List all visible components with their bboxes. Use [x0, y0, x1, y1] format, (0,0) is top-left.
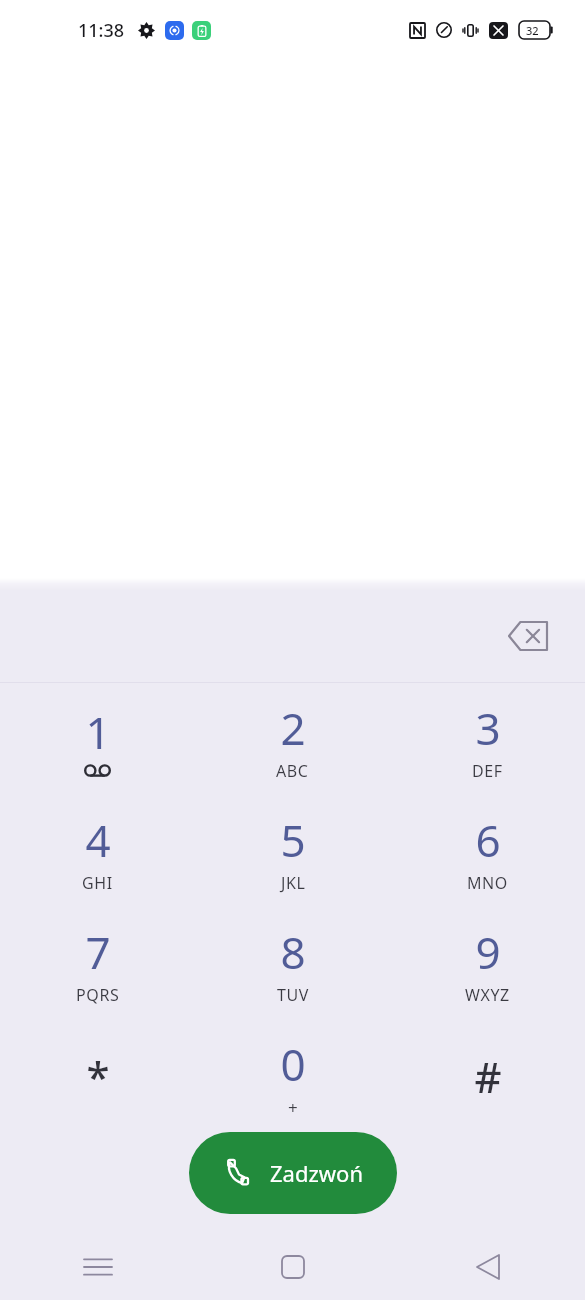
staticText: 32 — [526, 23, 539, 38]
staticText: 7 — [85, 922, 111, 982]
staticText: 9 — [475, 922, 501, 982]
button[interactable]: 8 — [195, 908, 390, 1020]
button[interactable]: 1 — [0, 683, 195, 796]
button[interactable]: # — [390, 1020, 585, 1132]
staticText: 4 — [85, 810, 111, 870]
button[interactable]: 2 — [195, 683, 390, 796]
staticText: JKL — [281, 872, 306, 894]
staticText: 0 — [280, 1034, 306, 1094]
button[interactable]: 4 — [0, 796, 195, 908]
button[interactable]: Zadzwoń — [189, 1132, 397, 1214]
button[interactable]: 5 — [195, 796, 390, 908]
staticText: 1 — [85, 702, 111, 762]
staticText: 6 — [475, 810, 501, 870]
button[interactable]: 0 — [195, 1020, 390, 1132]
staticText: WXYZ — [465, 984, 510, 1006]
staticText: DEF — [472, 760, 503, 782]
button[interactable]: Recents — [0, 1234, 195, 1300]
staticText: 11:38 — [78, 18, 125, 43]
staticText: 3 — [475, 698, 501, 758]
staticText: Zadzwoń — [270, 1158, 363, 1188]
staticText: TUV — [277, 984, 309, 1006]
staticText: 8 — [280, 922, 306, 982]
staticText: MNO — [467, 872, 508, 894]
staticText: 5 — [280, 810, 306, 870]
button[interactable]: 9 — [390, 908, 585, 1020]
button[interactable]: 7 — [0, 908, 195, 1020]
button[interactable]: Back — [390, 1234, 585, 1300]
button[interactable]: Backspace — [495, 603, 561, 669]
staticText: # — [474, 1048, 502, 1105]
button[interactable]: 3 — [390, 683, 585, 796]
button[interactable]: Home — [195, 1234, 390, 1300]
button[interactable]: 6 — [390, 796, 585, 908]
staticText: GHI — [82, 872, 113, 894]
staticText: + — [288, 1096, 298, 1119]
staticText: 2 — [280, 698, 306, 758]
staticText: ABC — [276, 760, 309, 782]
staticText: PQRS — [76, 984, 120, 1006]
button[interactable]: * — [0, 1020, 195, 1132]
staticText: * — [86, 1048, 110, 1105]
